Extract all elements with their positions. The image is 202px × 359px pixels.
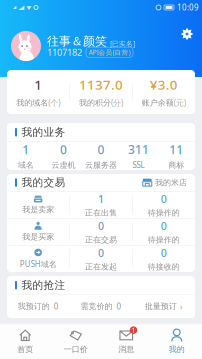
- staticText: PUSH域名: [20, 258, 57, 269]
- button[interactable]: 我的: [151, 328, 202, 354]
- staticText: 消息: [118, 344, 134, 354]
- staticText: API会员(自营): [88, 48, 130, 57]
- button[interactable]: 批量预订: [132, 300, 195, 312]
- button[interactable]: 0: [133, 219, 195, 245]
- staticText: 待操作的: [148, 208, 180, 218]
- staticText: 1: [131, 326, 135, 335]
- staticText: 我的积分: [79, 98, 111, 108]
- staticText: 待接收的: [148, 262, 180, 272]
- staticText: 账户余额: [142, 98, 174, 108]
- button[interactable]: 0: [45, 142, 82, 170]
- button[interactable]: 0: [82, 142, 120, 170]
- staticText: (分): [111, 97, 123, 108]
- staticText: 1: [98, 192, 104, 206]
- staticText: SSL: [133, 160, 145, 170]
- button[interactable]: 0: [70, 246, 132, 272]
- staticText: 需竞价的: [80, 301, 112, 311]
- staticText: 我的域名: [16, 98, 48, 108]
- staticText: 1107182: [47, 46, 82, 58]
- button[interactable]: 一口价: [50, 328, 101, 354]
- staticText: ›: [180, 300, 183, 312]
- staticText: 正在发起: [85, 262, 117, 272]
- staticText: 我是卖家: [22, 205, 54, 214]
- staticText: 正在出售: [85, 208, 117, 218]
- staticText: [已实名]: [110, 39, 135, 48]
- button[interactable]: 11: [157, 142, 195, 170]
- staticText: 我是买家: [22, 232, 54, 242]
- staticText: 我的: [169, 344, 185, 354]
- staticText: 首页: [17, 344, 33, 354]
- button[interactable]: 1: [70, 192, 132, 218]
- staticText: 0: [161, 192, 167, 206]
- staticText: 0: [98, 246, 104, 260]
- staticText: 我的抢注: [21, 279, 65, 292]
- staticText: 11: [169, 142, 183, 158]
- staticText: 311: [128, 141, 149, 157]
- staticText: 待操作的: [148, 235, 180, 245]
- button[interactable]: 首页: [0, 328, 50, 354]
- button[interactable]: 311: [120, 141, 157, 170]
- staticText: 0: [54, 301, 59, 312]
- staticText: 1137.0: [79, 76, 123, 93]
- button[interactable]: Settings: [179, 26, 195, 42]
- staticText: 0: [98, 219, 104, 233]
- button[interactable]: PUSH域名: [7, 248, 69, 269]
- staticText: 正在交易: [85, 235, 117, 245]
- staticText: 0: [116, 301, 121, 312]
- staticText: 1: [22, 142, 29, 158]
- button[interactable]: 我是买家: [7, 222, 69, 242]
- button[interactable]: 0: [133, 246, 195, 272]
- staticText: 我预订的: [18, 301, 50, 311]
- staticText: 批量预订: [145, 301, 177, 311]
- staticText: 0: [60, 142, 67, 158]
- button[interactable]: 我是卖家: [7, 195, 69, 214]
- button[interactable]: 我的米店: [142, 178, 187, 187]
- staticText: (元): [174, 97, 186, 108]
- button[interactable]: ¥3.0: [133, 76, 195, 108]
- staticText: ¥3.0: [150, 76, 178, 93]
- staticText: 我的米店: [155, 178, 187, 187]
- staticText: 往事＆颜笑: [47, 34, 107, 49]
- button[interactable]: 需竞价的: [70, 301, 132, 312]
- staticText: 0: [161, 219, 167, 233]
- staticText: 1: [34, 76, 42, 93]
- button[interactable]: 1: [7, 76, 69, 108]
- staticText: (个): [48, 97, 60, 108]
- staticText: 商标: [168, 160, 184, 170]
- staticText: 我的交易: [21, 176, 65, 189]
- staticText: 域名: [18, 160, 34, 170]
- button[interactable]: 1: [7, 142, 45, 170]
- staticText: 一口价: [64, 344, 88, 354]
- staticText: 10:09: [177, 2, 199, 13]
- staticText: 0: [161, 246, 167, 260]
- button[interactable]: 我预订的: [7, 301, 70, 312]
- staticText: 我的业务: [21, 126, 65, 139]
- staticText: 云虚机: [51, 160, 75, 170]
- staticText: 0: [97, 142, 104, 158]
- staticText: 云服务器: [85, 160, 117, 170]
- button[interactable]: 0: [70, 219, 132, 245]
- button[interactable]: 1: [101, 328, 151, 354]
- button[interactable]: 1137.0: [70, 76, 132, 108]
- button[interactable]: 0: [133, 192, 195, 218]
